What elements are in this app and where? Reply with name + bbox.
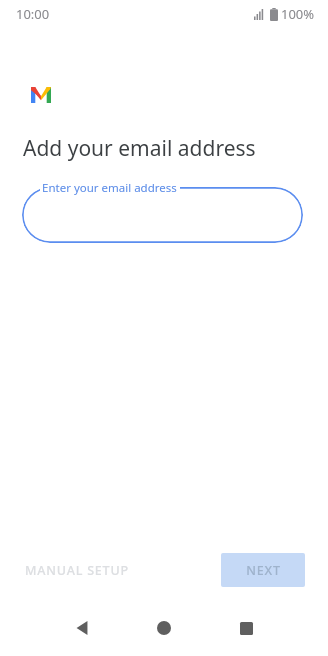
staticText: 10:00 [16,5,50,23]
staticText: 100% [281,5,315,23]
button[interactable]: Back [62,608,102,648]
staticText: Add your email address [23,134,256,163]
button[interactable] [22,187,303,243]
button[interactable]: Home [144,608,184,648]
staticText: MANUAL SETUP [25,562,129,579]
staticText: NEXT [246,562,281,579]
button[interactable]: NEXT [221,553,305,587]
button[interactable]: MANUAL SETUP [17,555,137,586]
button[interactable]: Recent apps [226,608,266,648]
staticText: Enter your email address [42,180,177,196]
